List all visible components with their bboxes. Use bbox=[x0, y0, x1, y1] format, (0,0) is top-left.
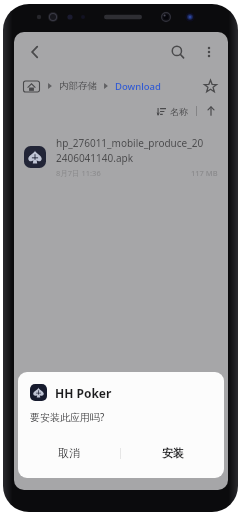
staticText: 安装 bbox=[162, 446, 184, 460]
staticText: 名称 bbox=[170, 106, 188, 117]
button[interactable]: 取消 bbox=[18, 438, 120, 468]
button[interactable]: Search bbox=[162, 36, 194, 68]
staticText: 8月7日 11:36 bbox=[56, 168, 101, 178]
button[interactable]: 安装 bbox=[121, 438, 224, 468]
button[interactable]: 名称 bbox=[154, 104, 191, 119]
button[interactable]: More options bbox=[194, 37, 224, 67]
staticText: 117 MB bbox=[191, 168, 218, 178]
button[interactable]: 内部存储 bbox=[59, 80, 97, 92]
staticText: HH Poker bbox=[55, 385, 112, 401]
staticText: hp_276011_mobile_produce_20 bbox=[56, 136, 204, 150]
button[interactable]: Back bbox=[18, 35, 52, 69]
button[interactable]: hp_276011_mobile_produce_20 bbox=[14, 132, 228, 182]
staticText: 取消 bbox=[58, 446, 80, 460]
button[interactable]: Sort ascending bbox=[202, 102, 220, 120]
staticText: 2406041140.apk bbox=[56, 151, 133, 165]
staticText: 要安装此应用吗? bbox=[30, 410, 105, 424]
button[interactable]: Home folder bbox=[23, 80, 40, 93]
button[interactable]: Add to favourites bbox=[198, 74, 222, 98]
button[interactable]: Download bbox=[115, 80, 161, 93]
